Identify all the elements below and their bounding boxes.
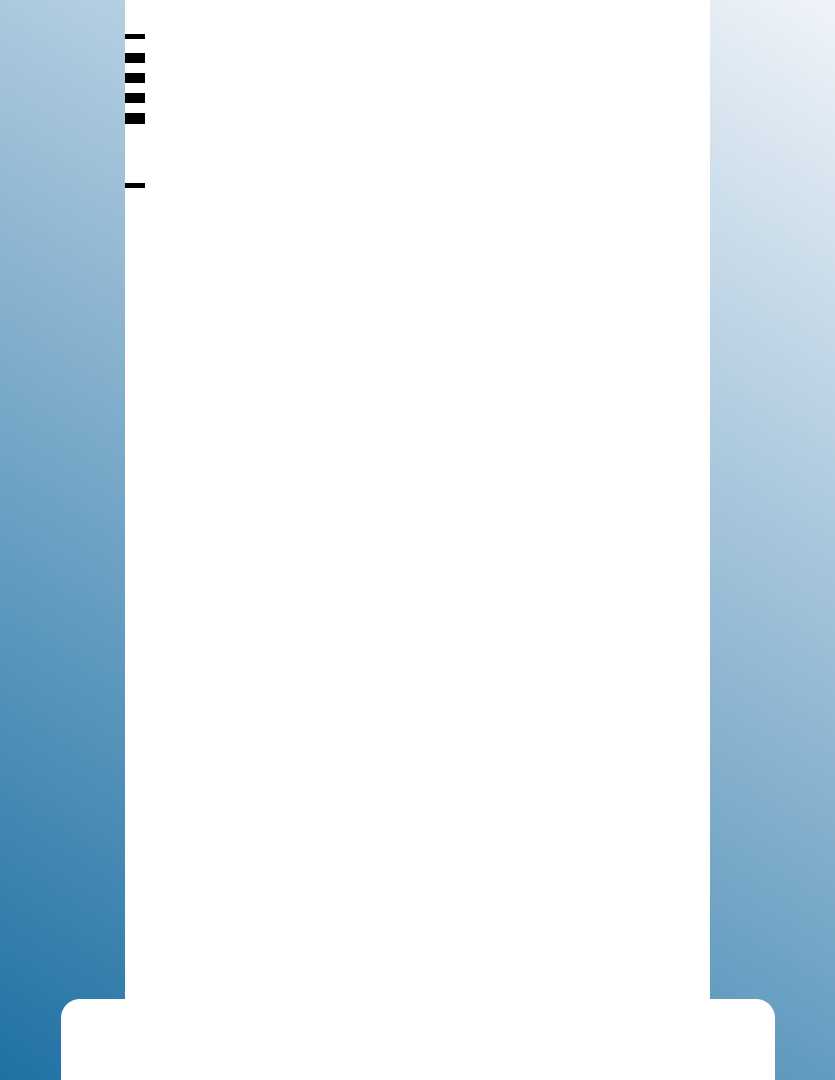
button[interactable]: Toolbar (61, 999, 775, 1080)
